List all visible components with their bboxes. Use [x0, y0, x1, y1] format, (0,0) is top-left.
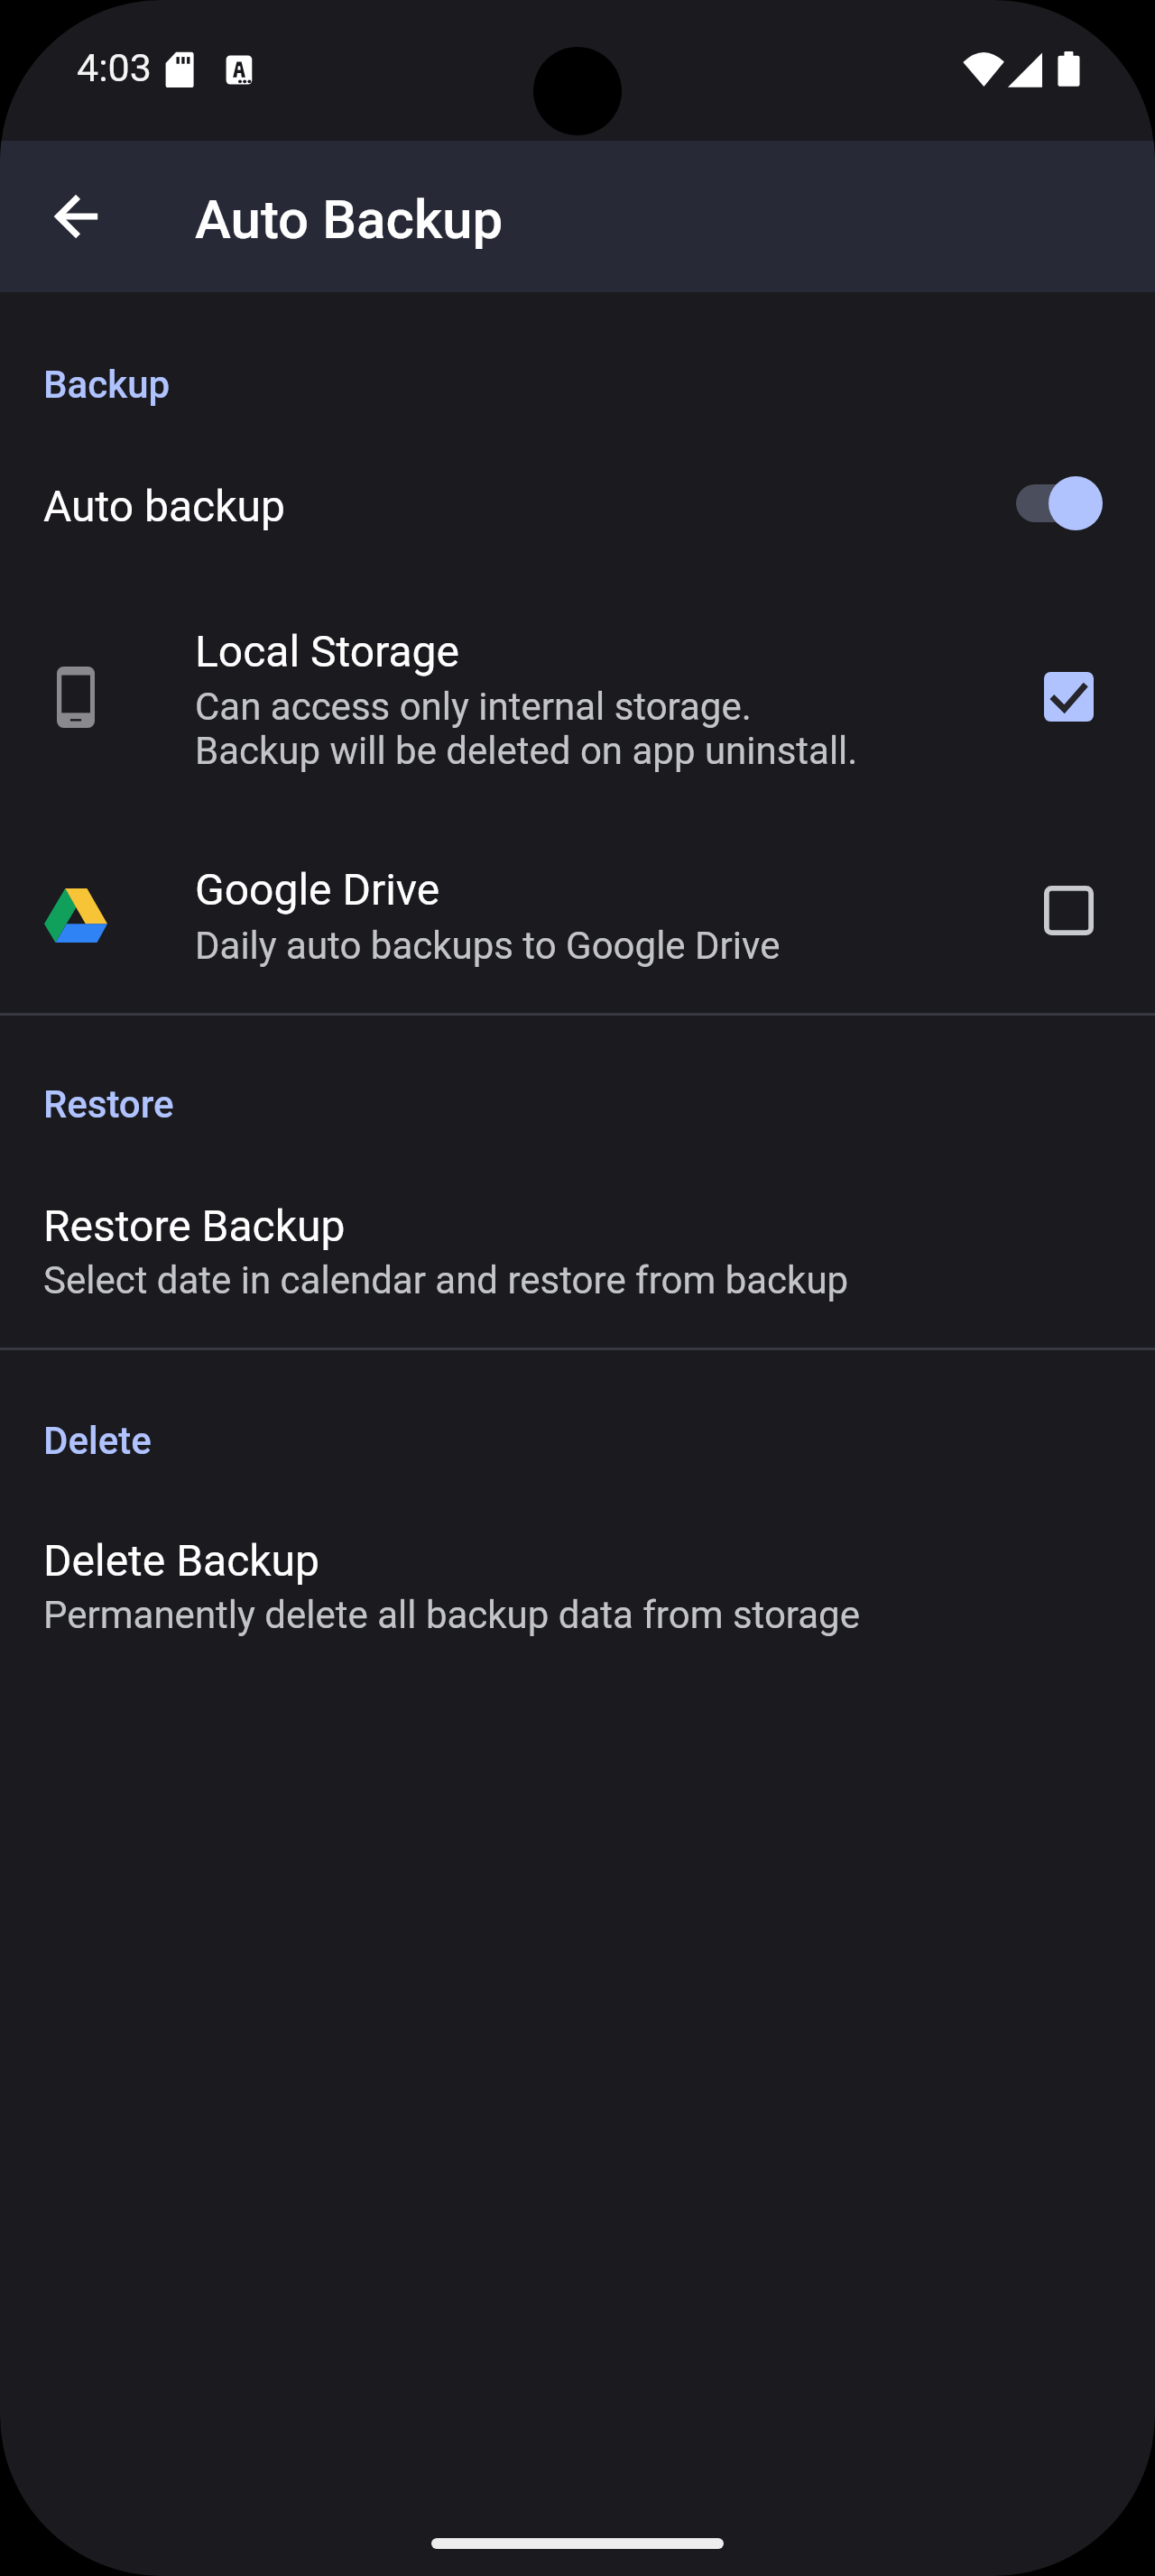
button[interactable]: Auto backup — [0, 448, 1155, 561]
button[interactable]: Delete Backup — [0, 1525, 1155, 1670]
staticText: Delete Backup — [43, 1537, 320, 1586]
button[interactable]: Back — [22, 162, 130, 271]
staticText: Auto backup — [43, 483, 285, 531]
staticText: Restore Backup — [43, 1202, 346, 1251]
button[interactable]: Auto backup toggle — [1016, 476, 1103, 530]
staticText: Daily auto backups to Google Drive — [195, 925, 781, 969]
button[interactable]: Google Drive — [0, 834, 1155, 988]
button[interactable]: Checked — [1044, 672, 1094, 722]
staticText: 4:03 — [77, 45, 152, 90]
button[interactable]: Restore Backup — [0, 1191, 1155, 1335]
staticText: Google Drive — [195, 866, 440, 915]
staticText: Local Storage — [195, 628, 459, 676]
staticText: Permanently delete all backup data from … — [43, 1594, 860, 1638]
staticText: Delete — [43, 1419, 152, 1463]
staticText: Restore — [43, 1082, 174, 1127]
staticText: Backup — [43, 363, 171, 407]
button[interactable]: Unchecked — [1044, 886, 1094, 935]
staticText: Can access only internal storage. Backup… — [195, 685, 858, 774]
button[interactable]: Local Storage — [0, 597, 1155, 797]
staticText: Auto Backup — [195, 188, 504, 251]
staticText: Select date in calendar and restore from… — [43, 1259, 849, 1303]
